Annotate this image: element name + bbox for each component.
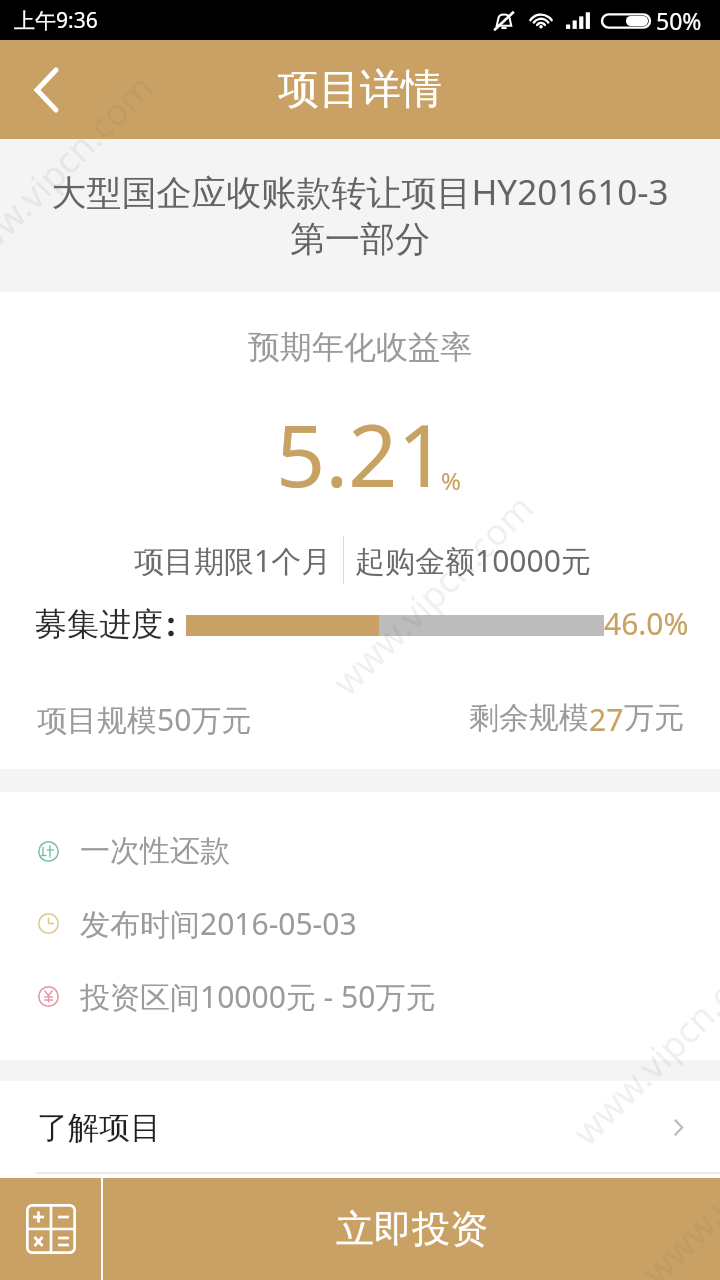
- staticText: 项目期限1个月: [134, 540, 332, 581]
- staticText: 募集进度: [35, 604, 163, 644]
- staticText: 一次性还款: [80, 832, 230, 870]
- staticText: www.vipcn.com: [0, 63, 163, 285]
- staticText: 万元: [624, 699, 684, 737]
- button[interactable]: 发布时间2016-05-03: [0, 897, 720, 949]
- staticText: 50%: [656, 5, 702, 36]
- staticText: 发布时间2016-05-03: [80, 903, 357, 944]
- button[interactable]: 了解项目: [0, 1081, 720, 1173]
- staticText: %: [441, 464, 461, 497]
- staticText: 预期年化收益率: [248, 327, 472, 367]
- staticText: 46.0%: [604, 603, 689, 643]
- button[interactable]: 投资区间10000元 - 50万元: [0, 970, 720, 1022]
- staticText: 大型国企应收账款转让项目HY201610-3 第一部分: [0, 168, 720, 262]
- staticText: 剩余规模: [469, 699, 589, 737]
- staticText: 项目详情: [278, 64, 442, 116]
- staticText: www.vipcn.com: [321, 483, 543, 705]
- staticText: 起购金额10000元: [355, 540, 591, 581]
- staticText: 项目规模50万元: [37, 699, 252, 740]
- button[interactable]: 一次性还款: [0, 825, 720, 877]
- staticText: www.vipcn.com: [631, 1073, 720, 1280]
- staticText: 上午9:36: [14, 6, 98, 35]
- staticText: 了解项目: [37, 1108, 161, 1147]
- staticText: 立即投资: [336, 1205, 488, 1253]
- staticText: www.vipcn.com: [561, 933, 720, 1155]
- button[interactable]: Back: [0, 40, 92, 139]
- staticText: 27: [589, 699, 624, 740]
- staticText: 5.21: [276, 395, 447, 505]
- button[interactable]: Calculator: [0, 1178, 101, 1280]
- staticText: 投资区间10000元 - 50万元: [80, 976, 436, 1017]
- button[interactable]: 立即投资: [103, 1178, 720, 1280]
